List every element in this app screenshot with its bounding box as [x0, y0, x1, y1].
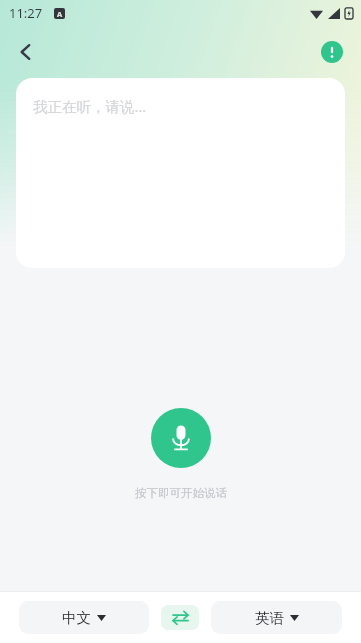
button[interactable]: Back [6, 32, 46, 72]
button[interactable]: Hold to speak [151, 408, 211, 468]
staticText: 中文 [62, 609, 91, 627]
staticText: 11:27 [9, 4, 43, 22]
button[interactable]: 英语 [211, 601, 342, 634]
button[interactable]: Swap languages [161, 605, 199, 630]
staticText: 我正在听，请说... [33, 96, 147, 116]
staticText: A [57, 9, 63, 19]
button[interactable]: Help [312, 32, 352, 72]
staticText: 英语 [255, 609, 284, 627]
button[interactable]: 中文 [19, 601, 149, 634]
button[interactable]: 我正在听，请说... [16, 78, 345, 268]
staticText: 按下即可开始说话 [135, 486, 227, 500]
